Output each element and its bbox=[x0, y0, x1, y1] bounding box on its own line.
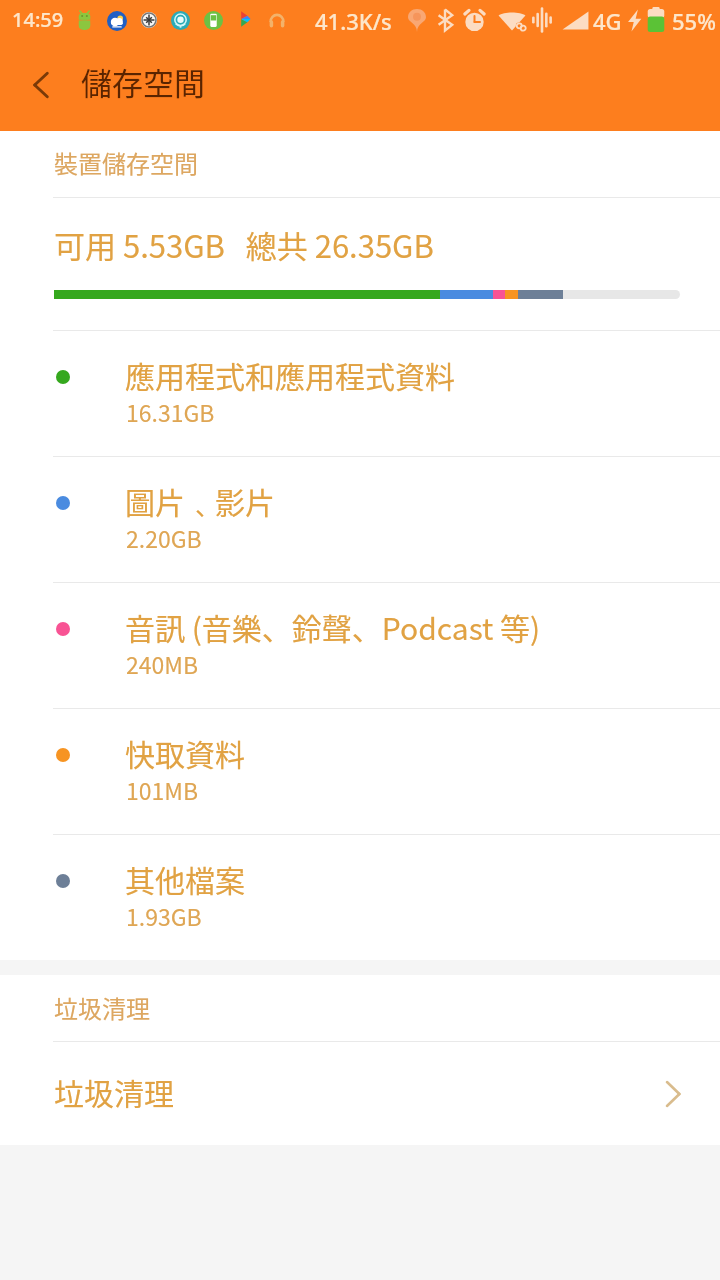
staticText: 垃圾清理 bbox=[54, 1070, 174, 1113]
button[interactable]: 音訊 (音樂、鈴聲、Podcast 等) bbox=[0, 583, 720, 708]
staticText: 可用 5.53GB 總共 26.35GB bbox=[54, 222, 434, 267]
staticText: 音訊 (音樂、鈴聲、Podcast 等) bbox=[125, 605, 541, 648]
staticText: 240MB bbox=[126, 647, 199, 680]
staticText: 4G bbox=[593, 6, 622, 36]
button[interactable]: 圖片﹑影片 bbox=[0, 457, 720, 582]
button[interactable]: 快取資料 bbox=[0, 709, 720, 834]
staticText: 應用程式和應用程式資料 bbox=[125, 353, 455, 396]
staticText: 圖片﹑影片 bbox=[125, 479, 275, 522]
button[interactable]: 其他檔案 bbox=[0, 835, 720, 960]
staticText: 快取資料 bbox=[125, 731, 245, 774]
staticText: 55% bbox=[672, 6, 716, 36]
button[interactable]: 垃圾清理 bbox=[0, 1042, 720, 1145]
staticText: 41.3K/s bbox=[315, 6, 392, 36]
staticText: 垃圾清理 bbox=[54, 990, 150, 1025]
staticText: 16.31GB bbox=[126, 395, 215, 428]
staticText: 裝置儲存空間 bbox=[54, 145, 198, 180]
staticText: 儲存空間 bbox=[81, 59, 205, 104]
button[interactable]: 應用程式和應用程式資料 bbox=[0, 331, 720, 456]
staticText: 其他檔案 bbox=[125, 857, 245, 900]
staticText: 2.20GB bbox=[126, 521, 202, 554]
staticText: 1.93GB bbox=[126, 899, 202, 932]
staticText: 101MB bbox=[126, 773, 199, 806]
button[interactable]: Back bbox=[8, 57, 72, 121]
staticText: 14:59 bbox=[12, 6, 64, 33]
